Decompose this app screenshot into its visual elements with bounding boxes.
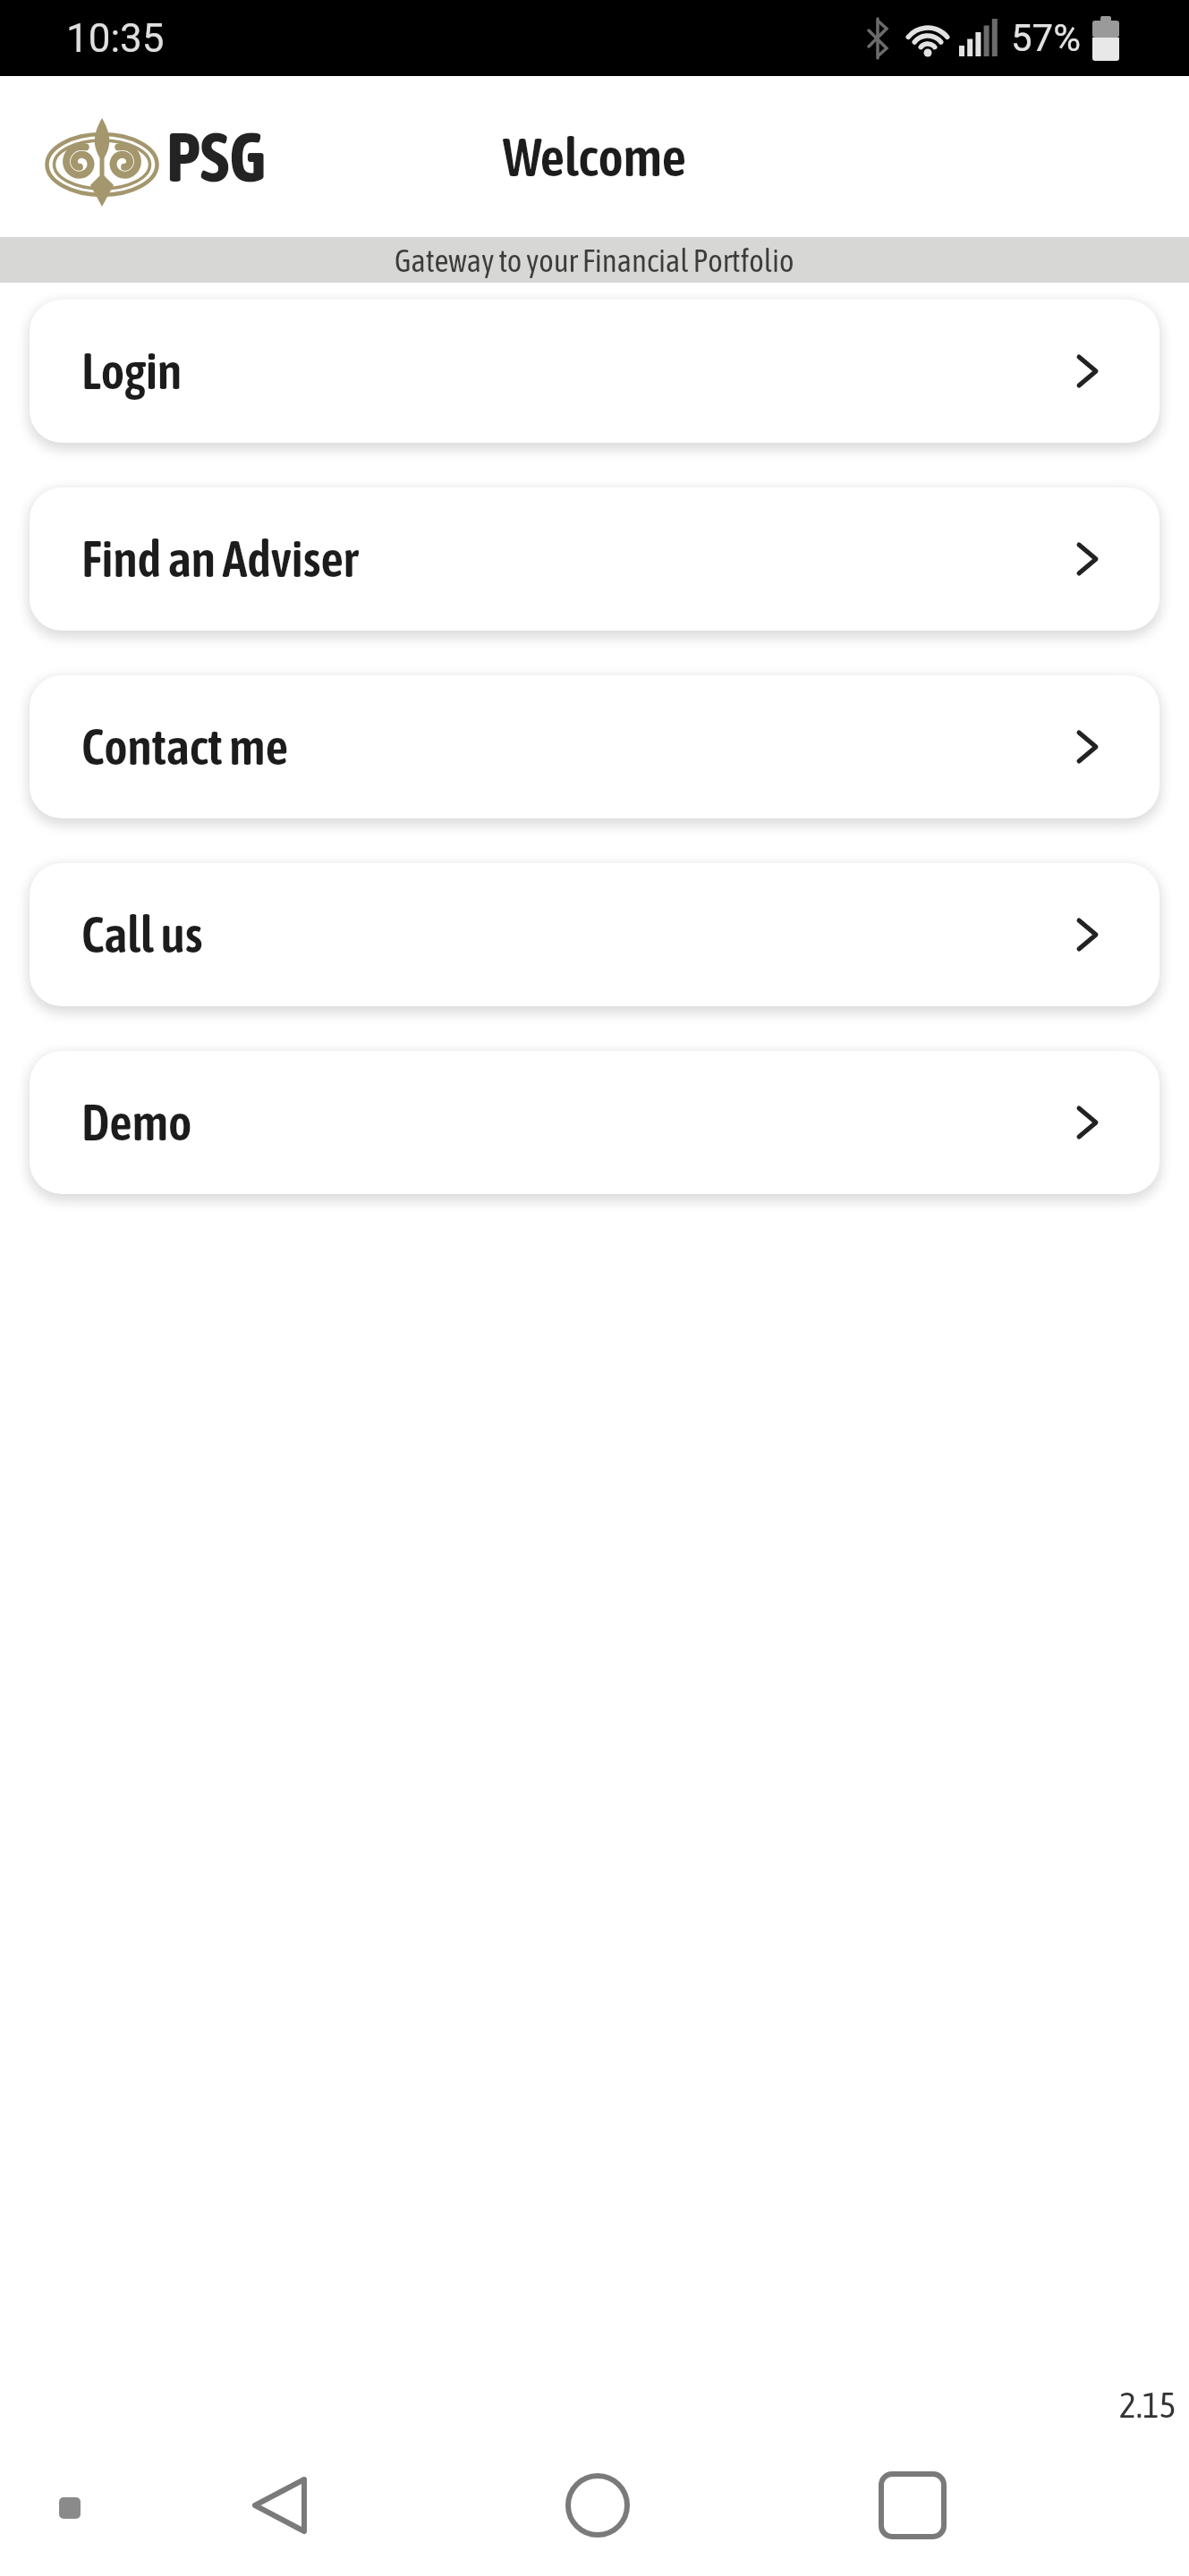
staticText: Find an Adviser xyxy=(81,530,359,588)
button[interactable] xyxy=(863,2456,962,2555)
staticText: Contact me xyxy=(81,718,289,775)
staticText: 10:35 xyxy=(66,15,165,62)
staticText: Welcome xyxy=(503,126,687,188)
button[interactable]: Login xyxy=(30,300,1159,443)
staticText: Call us xyxy=(81,906,203,963)
staticText: Login xyxy=(81,343,183,400)
button[interactable] xyxy=(548,2456,647,2555)
staticText: 57% xyxy=(1011,16,1081,60)
staticText: PSG xyxy=(166,117,266,196)
button[interactable]: Call us xyxy=(30,863,1159,1006)
staticText: 2.15 xyxy=(1119,2385,1176,2426)
staticText: Gateway to your Financial Portfolio xyxy=(395,242,794,278)
button[interactable] xyxy=(231,2456,329,2555)
button[interactable]: Contact me xyxy=(30,675,1159,818)
button[interactable]: Find an Adviser xyxy=(30,487,1159,631)
staticText: Demo xyxy=(81,1094,192,1151)
button[interactable]: Demo xyxy=(30,1051,1159,1194)
